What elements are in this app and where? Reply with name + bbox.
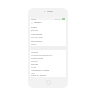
staticText: 4.2 GB <box>31 66 36 68</box>
staticText: Carrier <box>31 18 37 20</box>
button[interactable]: Privacy mode <box>30 56 66 62</box>
staticText: 9:41 AM <box>55 18 61 20</box>
staticText: Account <box>31 51 39 54</box>
button[interactable]: Profile <box>30 25 66 32</box>
staticText: Settings <box>34 21 42 24</box>
staticText: Profile <box>31 26 37 29</box>
staticText: Notifications cleared <box>31 69 50 72</box>
button[interactable]: Storage <box>30 62 66 68</box>
staticText: Check for update <box>31 74 47 77</box>
staticText: 30 min <box>31 43 37 45</box>
staticText: John Doe <box>31 29 38 31</box>
button[interactable]: Auto-backup <box>30 32 66 39</box>
button[interactable]: Account <box>30 50 66 56</box>
staticText: Storage <box>31 63 38 66</box>
staticText: Privacy mode <box>31 57 43 60</box>
staticText: Sync interval <box>31 40 43 43</box>
staticText: All sounds and vibrations on <box>31 54 53 56</box>
button[interactable]: Notifications cleared <box>30 68 66 74</box>
button[interactable]: Sync interval <box>30 39 66 46</box>
button[interactable]: Back <box>30 20 66 25</box>
staticText: Auto-backup <box>31 33 43 36</box>
staticText: Location <box>31 60 38 62</box>
button[interactable]: Check for update <box>30 74 66 77</box>
staticText: 12:45 <box>31 72 36 74</box>
staticText: Wi-Fi only, daily <box>31 36 43 38</box>
